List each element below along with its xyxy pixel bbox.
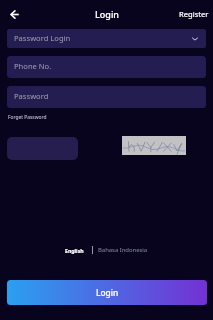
button[interactable] xyxy=(7,137,78,160)
staticText: Forget Password xyxy=(8,114,47,121)
staticText: Password Login xyxy=(14,33,71,43)
staticText: Password xyxy=(14,91,49,101)
button[interactable]: Register xyxy=(175,4,213,24)
staticText: Phone No. xyxy=(14,61,52,71)
button[interactable]: Login xyxy=(7,280,207,305)
button[interactable]: Phone No. xyxy=(7,56,206,78)
staticText: Login xyxy=(95,8,119,20)
button[interactable]: Forget Password xyxy=(7,112,48,123)
staticText: English xyxy=(65,247,84,254)
button[interactable]: Captcha image, tap to refresh xyxy=(122,136,186,155)
button[interactable]: Bahasa Indonesia xyxy=(93,243,152,257)
staticText: Login xyxy=(96,287,119,298)
button[interactable]: Password Login xyxy=(7,29,206,48)
staticText: Register xyxy=(179,9,209,19)
staticText: Bahasa Indonesia xyxy=(98,246,148,254)
button[interactable]: Password xyxy=(7,86,206,108)
button[interactable]: English xyxy=(61,244,92,257)
button[interactable]: Back xyxy=(5,5,24,24)
